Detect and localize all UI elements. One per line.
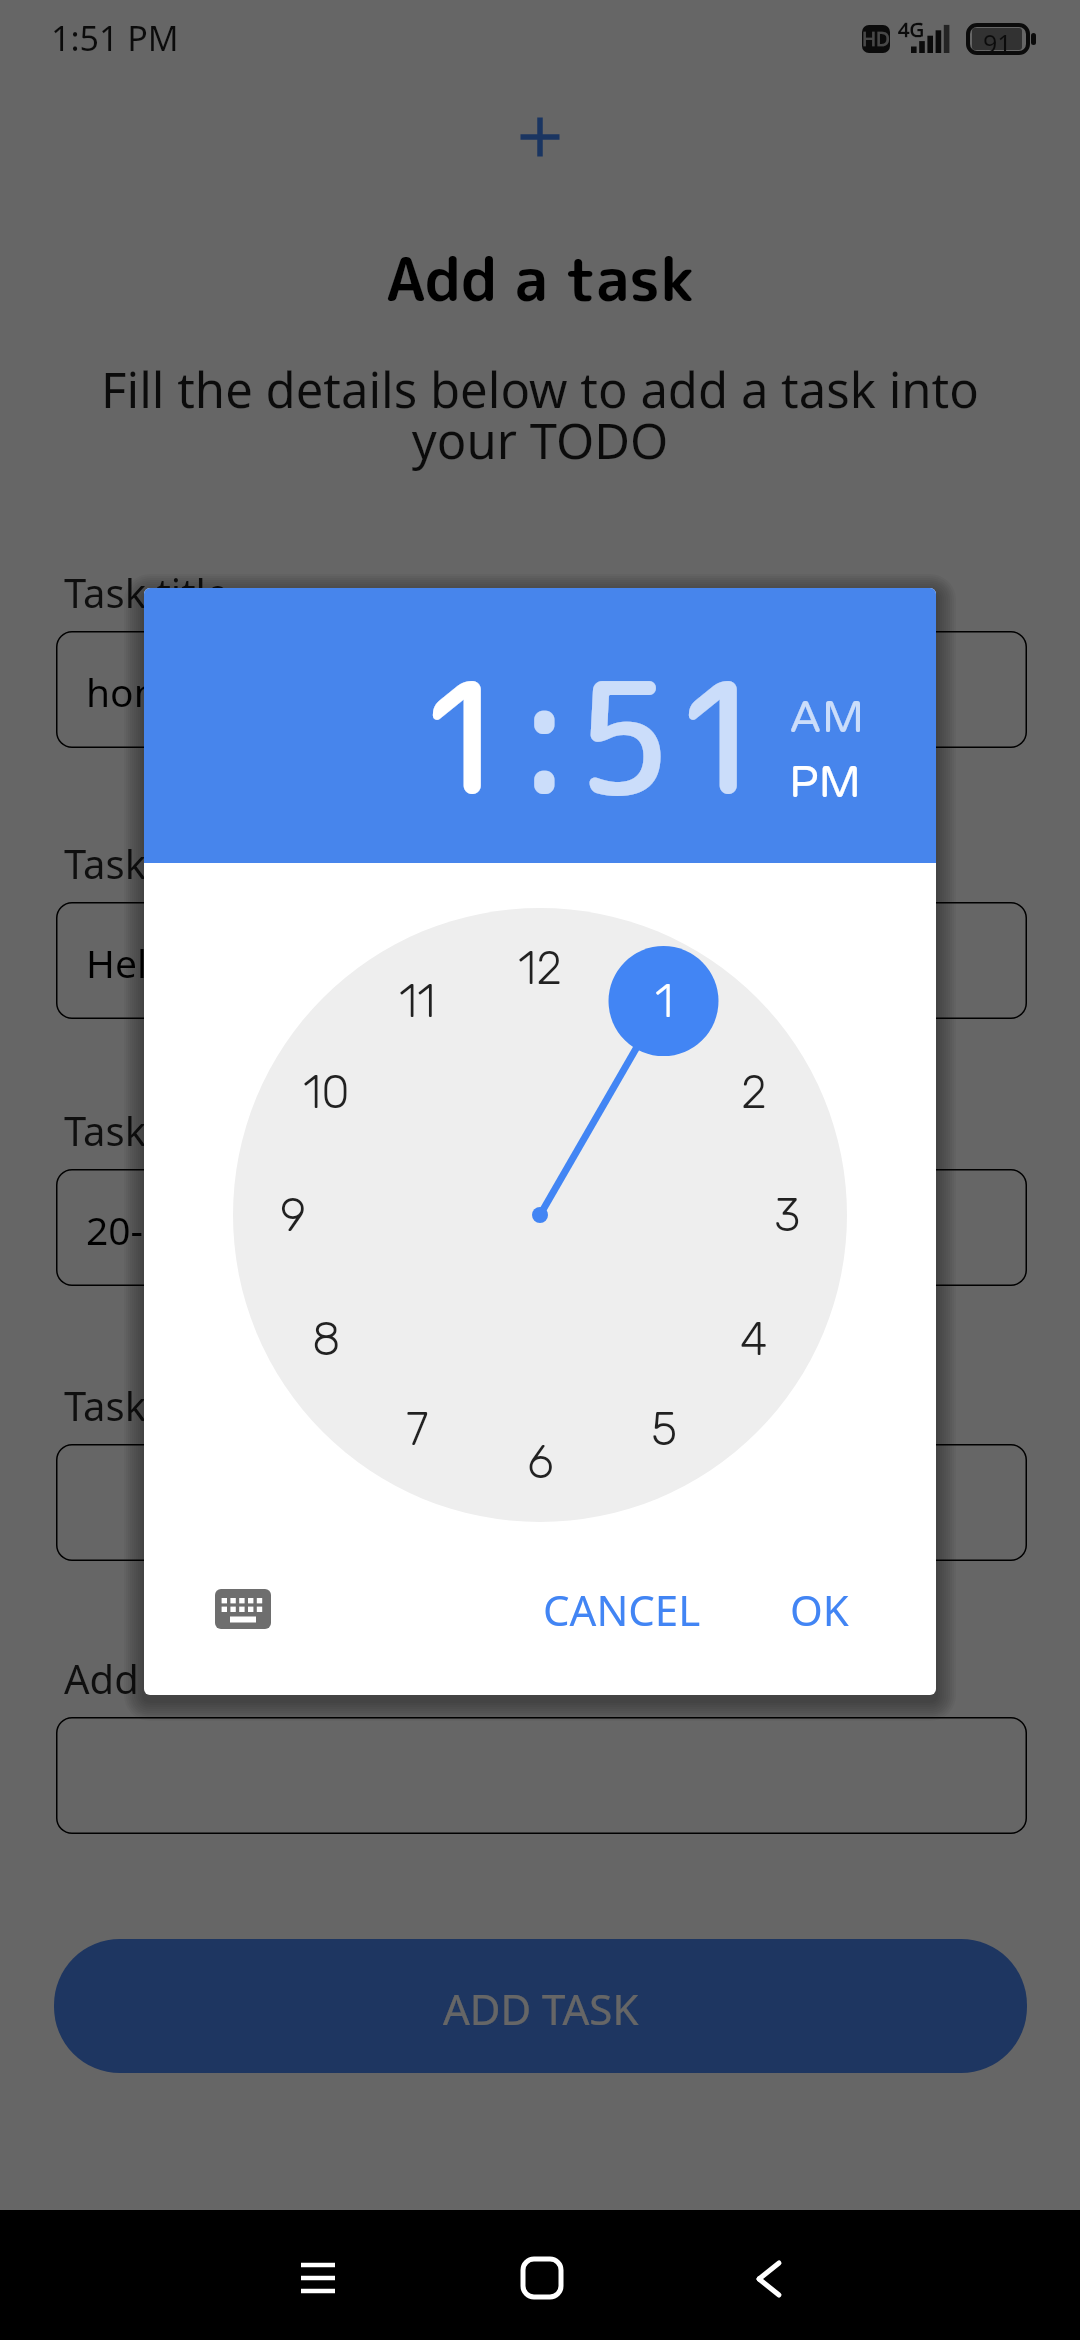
staticText: 51 bbox=[575, 628, 770, 843]
staticText: 11 bbox=[399, 974, 436, 1029]
button[interactable]: 6 bbox=[485, 1407, 595, 1517]
staticText: home work bbox=[86, 665, 294, 718]
button[interactable]: Home bbox=[428, 2210, 652, 2340]
staticText: 3 bbox=[774, 1188, 801, 1243]
button[interactable]: 4 bbox=[699, 1284, 809, 1394]
button[interactable] bbox=[56, 1444, 1027, 1561]
staticText: 4G bbox=[898, 16, 924, 43]
staticText: 20-06-2021 bbox=[86, 1203, 290, 1256]
staticText: Fill the details below to add a task int… bbox=[92, 356, 988, 473]
button[interactable]: 9 bbox=[238, 1160, 348, 1270]
button[interactable]: 7 bbox=[362, 1374, 472, 1484]
button[interactable]: Switch to text input mode bbox=[193, 1559, 293, 1659]
button[interactable]: Hello bbox=[56, 902, 1027, 1019]
staticText: : bbox=[514, 628, 575, 843]
staticText: 2 bbox=[741, 1065, 767, 1120]
button[interactable]: 12 bbox=[485, 913, 595, 1023]
staticText: 1 bbox=[655, 974, 674, 1029]
staticText: 8 bbox=[312, 1312, 341, 1367]
staticText: Hello bbox=[86, 936, 181, 989]
staticText: Task time bbox=[64, 1378, 242, 1432]
staticText: 12 bbox=[518, 941, 563, 996]
button[interactable]: OK bbox=[766, 1563, 873, 1656]
button[interactable]: 1 bbox=[609, 946, 719, 1056]
button[interactable]: home work bbox=[56, 631, 1027, 748]
button[interactable]: 10 bbox=[271, 1037, 381, 1147]
staticText: 6 bbox=[527, 1435, 554, 1490]
staticText: 1 bbox=[416, 628, 514, 843]
button[interactable]: PM bbox=[789, 757, 862, 810]
staticText: 10 bbox=[303, 1065, 350, 1120]
staticText: 91 bbox=[983, 26, 1012, 56]
button[interactable]: 3 bbox=[732, 1160, 842, 1270]
staticText: Task title bbox=[64, 565, 229, 619]
staticText: Task date bbox=[64, 1103, 241, 1157]
button[interactable]: Back bbox=[652, 2210, 876, 2340]
staticText: PM bbox=[789, 757, 862, 810]
button[interactable]: AM bbox=[789, 692, 865, 745]
staticText: AM bbox=[789, 692, 865, 745]
button[interactable]: 1 bbox=[416, 628, 514, 843]
staticText: Add a task bbox=[0, 236, 1080, 320]
staticText: ADD TASK bbox=[443, 1980, 639, 2037]
button[interactable]: 51 bbox=[575, 628, 770, 843]
staticText: 5 bbox=[651, 1402, 678, 1457]
staticText: 9 bbox=[280, 1188, 307, 1243]
button[interactable]: CANCEL bbox=[519, 1563, 725, 1656]
button[interactable] bbox=[56, 1717, 1027, 1834]
staticText: 1:51 PM bbox=[51, 15, 179, 61]
button[interactable]: 5 bbox=[609, 1374, 719, 1484]
button[interactable]: Recent apps bbox=[204, 2210, 428, 2340]
button[interactable]: 8 bbox=[271, 1284, 381, 1394]
staticText: CANCEL bbox=[543, 1581, 701, 1638]
staticText: Task description bbox=[64, 836, 368, 890]
button[interactable]: 11 bbox=[362, 946, 472, 1056]
staticText: HD bbox=[862, 26, 890, 52]
staticText: 7 bbox=[406, 1402, 429, 1457]
button[interactable]: Add task bbox=[490, 87, 590, 187]
staticText: Add a reminder bbox=[64, 1651, 357, 1705]
button[interactable]: 2 bbox=[699, 1037, 809, 1147]
button[interactable]: ADD TASK bbox=[54, 1939, 1027, 2073]
staticText: OK bbox=[790, 1581, 849, 1638]
staticText: 4 bbox=[740, 1312, 768, 1367]
button[interactable]: 20-06-2021 bbox=[56, 1169, 1027, 1286]
